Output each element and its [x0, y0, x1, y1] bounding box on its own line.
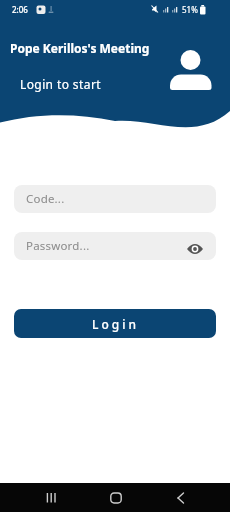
- staticText: Login: [92, 316, 139, 332]
- button[interactable]: Login: [14, 309, 216, 338]
- staticText: 51%: [182, 4, 198, 15]
- staticText: Password...: [26, 238, 90, 254]
- button[interactable]: Code...: [14, 185, 216, 213]
- staticText: Code...: [26, 191, 65, 207]
- staticText: 2:06: [12, 4, 28, 15]
- button[interactable]: Password...: [14, 232, 216, 260]
- staticText: Pope Kerillos's Meeting: [10, 40, 150, 56]
- button[interactable]: [104, 483, 128, 512]
- button[interactable]: [185, 241, 205, 257]
- button[interactable]: [39, 483, 63, 512]
- button[interactable]: [167, 483, 191, 512]
- staticText: Login to start: [20, 76, 101, 92]
